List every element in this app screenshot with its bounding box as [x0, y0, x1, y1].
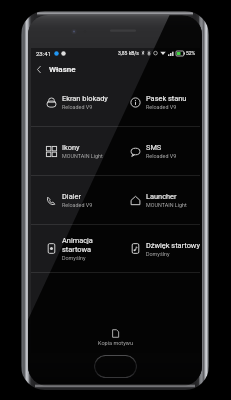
button[interactable]: Home [94, 355, 137, 378]
button[interactable]: Ekran blokady [31, 78, 115, 126]
button[interactable]: Kopia motywu [31, 323, 200, 351]
button[interactable]: SMS [115, 127, 200, 175]
staticText: Reloaded V9 [146, 104, 177, 110]
staticText: Domyślny [146, 251, 170, 257]
staticText: MOUNTAIN Light [62, 153, 103, 159]
staticText: MOUNTAIN Light [146, 202, 187, 208]
button[interactable]: Dźwięk startowy [115, 225, 200, 272]
staticText: 23:41 [36, 50, 51, 57]
button[interactable]: Ikony [31, 127, 115, 175]
button[interactable]: Dialer [31, 176, 115, 224]
staticText: 52% [186, 50, 196, 56]
staticText: Dialer [62, 192, 81, 201]
staticText: Domyślny [62, 255, 86, 261]
staticText: Dźwięk startowy [146, 241, 200, 250]
button[interactable]: Back [32, 62, 46, 76]
staticText: Reloaded V9 [146, 153, 177, 159]
staticText: Launcher [146, 192, 177, 201]
staticText: Reloaded V9 [62, 202, 93, 208]
button[interactable]: Pasek stanu [115, 78, 200, 126]
staticText: 3,85 kB/s [118, 50, 139, 56]
staticText: Kopia motywu [98, 340, 133, 346]
staticText: SMS [146, 143, 162, 152]
staticText: Reloaded V9 [62, 104, 93, 110]
button[interactable]: Launcher [115, 176, 200, 224]
staticText: Ekran blokady [62, 94, 108, 103]
staticText: Pasek stanu [146, 94, 187, 103]
staticText: Własne [49, 65, 76, 74]
button[interactable]: Animacja startowa [31, 225, 115, 272]
staticText: Ikony [62, 143, 80, 152]
staticText: Animacja startowa [62, 236, 93, 254]
